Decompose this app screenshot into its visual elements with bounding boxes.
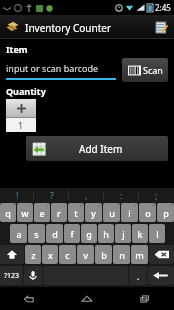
staticText: 9 [152,203,155,208]
staticText: 1 [12,203,15,208]
staticText: 4 [63,203,66,208]
button[interactable]: v [77,245,94,264]
button[interactable]: p [157,203,174,222]
button[interactable]: b [95,245,112,264]
button[interactable]: Recent apps [116,287,174,310]
button[interactable]: w [17,203,33,222]
button[interactable]: Enter [148,266,174,285]
button[interactable]: g [81,224,97,243]
staticText: u [109,207,115,219]
button[interactable]: ? [34,188,69,202]
button[interactable]: k [132,224,148,243]
staticText: Inventory Counter [25,21,112,35]
button[interactable]: c [59,245,76,264]
staticText: z [31,249,36,261]
staticText: r [57,207,61,219]
button[interactable]: t [68,203,84,222]
staticText: Scan [143,64,163,76]
button[interactable]: Back [0,287,58,310]
staticText: 1 [18,119,24,131]
button[interactable]: Shift [0,245,24,264]
button[interactable]: Home [58,287,116,310]
staticText: l [156,228,159,240]
button[interactable]: Add Item [26,136,168,161]
button[interactable]: l [149,224,165,243]
staticText: t [74,207,78,219]
staticText: p [163,207,169,219]
staticText: k [137,228,143,240]
button[interactable]: r [51,203,67,222]
button[interactable]: a [10,224,27,243]
button[interactable]: s [28,224,45,243]
staticText: ; [155,189,158,201]
button[interactable]: , [69,188,104,202]
staticText: d [52,228,58,240]
button[interactable]: ! [0,188,34,202]
button[interactable]: ; [139,188,174,202]
button[interactable]: q [0,203,16,222]
staticText: c [65,249,70,261]
staticText: g [86,228,92,240]
staticText: Add Item [79,142,123,156]
staticText: s [34,228,39,240]
staticText: h [103,228,109,240]
button[interactable]: x [42,245,58,264]
button[interactable]: Voice input [24,266,42,285]
button[interactable]: Backspace [149,245,174,264]
staticText: 2 [29,203,32,208]
button[interactable]: h [98,224,114,243]
button[interactable]: e [34,203,50,222]
staticText: b [101,249,107,261]
staticText: , [85,189,88,201]
staticText: a [16,228,22,240]
staticText: 6 [98,203,101,208]
staticText: Item [6,43,28,55]
staticText: f [70,228,74,240]
button[interactable]: z [25,245,41,264]
staticText: y [91,207,96,219]
button[interactable]: : [104,188,139,202]
button[interactable]: . [129,266,147,285]
button[interactable]: input or scan barcode [6,58,116,78]
button[interactable]: f [64,224,80,243]
staticText: 2:45 [155,2,171,13]
staticText: n [119,249,125,261]
button[interactable]: n [113,245,130,264]
staticText: ? [50,189,54,201]
staticText: v [83,249,88,261]
button[interactable]: y [85,203,102,222]
button[interactable]: Increase quantity [6,99,36,117]
staticText: 3 [46,203,49,208]
staticText: j [122,228,125,240]
staticText: i [128,207,131,219]
staticText: 7 [116,203,119,208]
staticText: . [137,270,140,282]
button[interactable]: Scan [122,58,168,82]
staticText: o [145,207,151,219]
staticText: x [48,249,53,261]
staticText: input or scan barcode [6,62,99,74]
button[interactable]: m [131,245,148,264]
staticText: e [39,207,45,219]
staticText: ! [16,189,19,201]
button[interactable]: Edit list [148,15,174,39]
button[interactable]: o [139,203,156,222]
staticText: q [5,207,11,219]
staticText: 8 [134,203,137,208]
button[interactable]: j [115,224,131,243]
button[interactable]: i [121,203,138,222]
button[interactable]: d [46,224,63,243]
staticText: 0 [170,203,173,208]
staticText: : [120,189,123,201]
staticText: m [135,249,144,261]
button[interactable]: ?123 [0,266,23,285]
staticText: w [21,207,29,219]
staticText: ?123 [4,271,20,281]
button[interactable]: u [103,203,120,222]
button[interactable]: 1 [6,118,36,132]
staticText: Quantity [6,85,46,97]
staticText: 5 [80,203,83,208]
